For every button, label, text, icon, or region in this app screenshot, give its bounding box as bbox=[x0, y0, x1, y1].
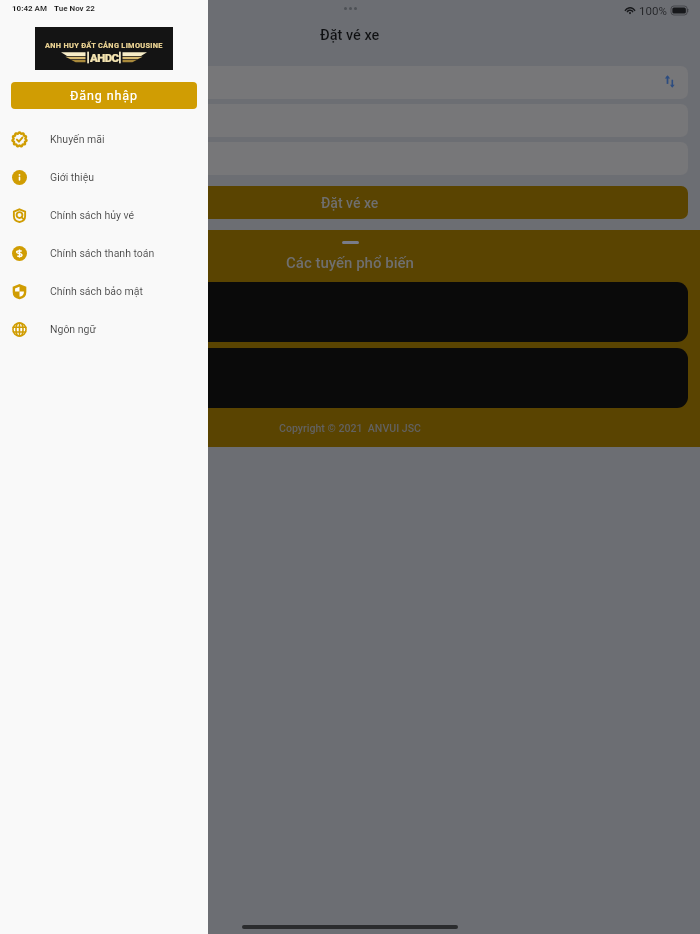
staticText: Chính sách thanh toán bbox=[50, 247, 155, 259]
button[interactable]: Khuyến mãi bbox=[0, 120, 208, 158]
staticText: Các tuyến phổ biến bbox=[286, 254, 414, 272]
button[interactable]: Giới thiệu bbox=[0, 158, 208, 196]
button[interactable] bbox=[12, 104, 688, 137]
button[interactable]: Đăng nhập bbox=[11, 82, 197, 109]
button[interactable]: Swap locations bbox=[663, 74, 678, 89]
staticText: ANH HUY ĐẤT CẢNG LIMOUSINE bbox=[45, 41, 163, 50]
staticText: Chính sách bảo mật bbox=[50, 285, 143, 297]
staticText: Ngôn ngữ bbox=[50, 323, 96, 335]
staticText: Copyright © 2021 ANVUI JSC bbox=[279, 422, 421, 434]
staticText: Chính sách hủy vé bbox=[50, 209, 135, 221]
button[interactable]: Chính sách thanh toán bbox=[0, 234, 208, 272]
button[interactable]: Ngôn ngữ bbox=[0, 310, 208, 348]
staticText: Đăng nhập bbox=[70, 88, 138, 103]
staticText: Khuyến mãi bbox=[50, 133, 105, 145]
staticText: AHDC bbox=[90, 51, 119, 64]
button[interactable] bbox=[12, 282, 688, 342]
button[interactable]: Đặt vé xe bbox=[12, 186, 688, 219]
button[interactable] bbox=[12, 142, 688, 175]
button[interactable]: Chính sách bảo mật bbox=[0, 272, 208, 310]
button[interactable]: ANH HUY ĐẤT CẢNG LIMOUSINE bbox=[35, 27, 173, 70]
staticText: 10:42 AM bbox=[12, 4, 48, 13]
button[interactable] bbox=[12, 66, 688, 99]
staticText: Đặt vé xe bbox=[321, 195, 379, 211]
staticText: Tue Nov 22 bbox=[54, 4, 95, 13]
staticText: Giới thiệu bbox=[50, 171, 94, 183]
staticText: Đặt vé xe bbox=[320, 27, 380, 44]
button[interactable] bbox=[12, 348, 688, 408]
button[interactable]: Chính sách hủy vé bbox=[0, 196, 208, 234]
staticText: 100% bbox=[639, 4, 667, 17]
